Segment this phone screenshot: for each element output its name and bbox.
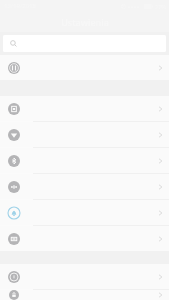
button[interactable]: sound settings <box>0 174 169 199</box>
button[interactable]: battery settings <box>0 226 169 251</box>
button[interactable]: wifi settings <box>0 122 169 147</box>
button[interactable]: lock settings <box>0 290 169 300</box>
button[interactable]: sim settings <box>0 96 169 121</box>
button[interactable]: bell settings <box>0 200 169 225</box>
button[interactable]: pause settings <box>0 55 169 80</box>
button[interactable]: bluetooth settings <box>0 148 169 173</box>
button[interactable]: info settings <box>0 264 169 289</box>
